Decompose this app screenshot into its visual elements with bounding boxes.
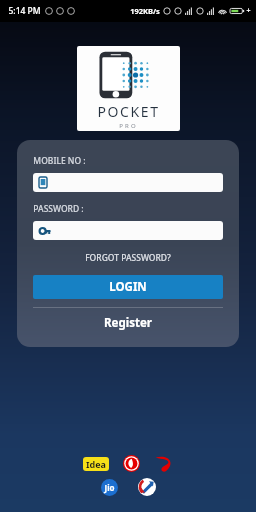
button[interactable]: Vodafone [123, 455, 140, 472]
button[interactable]: Password input [33, 221, 223, 240]
staticText: PRO [119, 122, 138, 130]
staticText: PASSWORD : [33, 203, 84, 215]
button[interactable]: Register [33, 314, 223, 332]
button[interactable]: Jio [101, 479, 118, 496]
button[interactable]: Mobile number input [33, 173, 223, 192]
staticText: Register [104, 315, 152, 331]
staticText: MOBILE NO : [33, 155, 86, 167]
staticText: 192KB/s [130, 6, 160, 16]
staticText: LOGIN [109, 279, 147, 295]
staticText: Idea [86, 458, 106, 470]
button[interactable]: LOGIN [33, 275, 223, 299]
staticText: 5:14 PM [8, 5, 41, 17]
staticText: POCKET [97, 102, 160, 121]
staticText: FORGOT PASSWORD? [85, 252, 171, 264]
button[interactable]: FORGOT PASSWORD? [33, 251, 223, 265]
button[interactable]: BSNL [138, 478, 156, 496]
button[interactable]: Idea [83, 457, 109, 471]
button[interactable]: Airtel [154, 456, 174, 472]
staticText: Jio [104, 482, 115, 493]
staticText: + [246, 6, 251, 16]
